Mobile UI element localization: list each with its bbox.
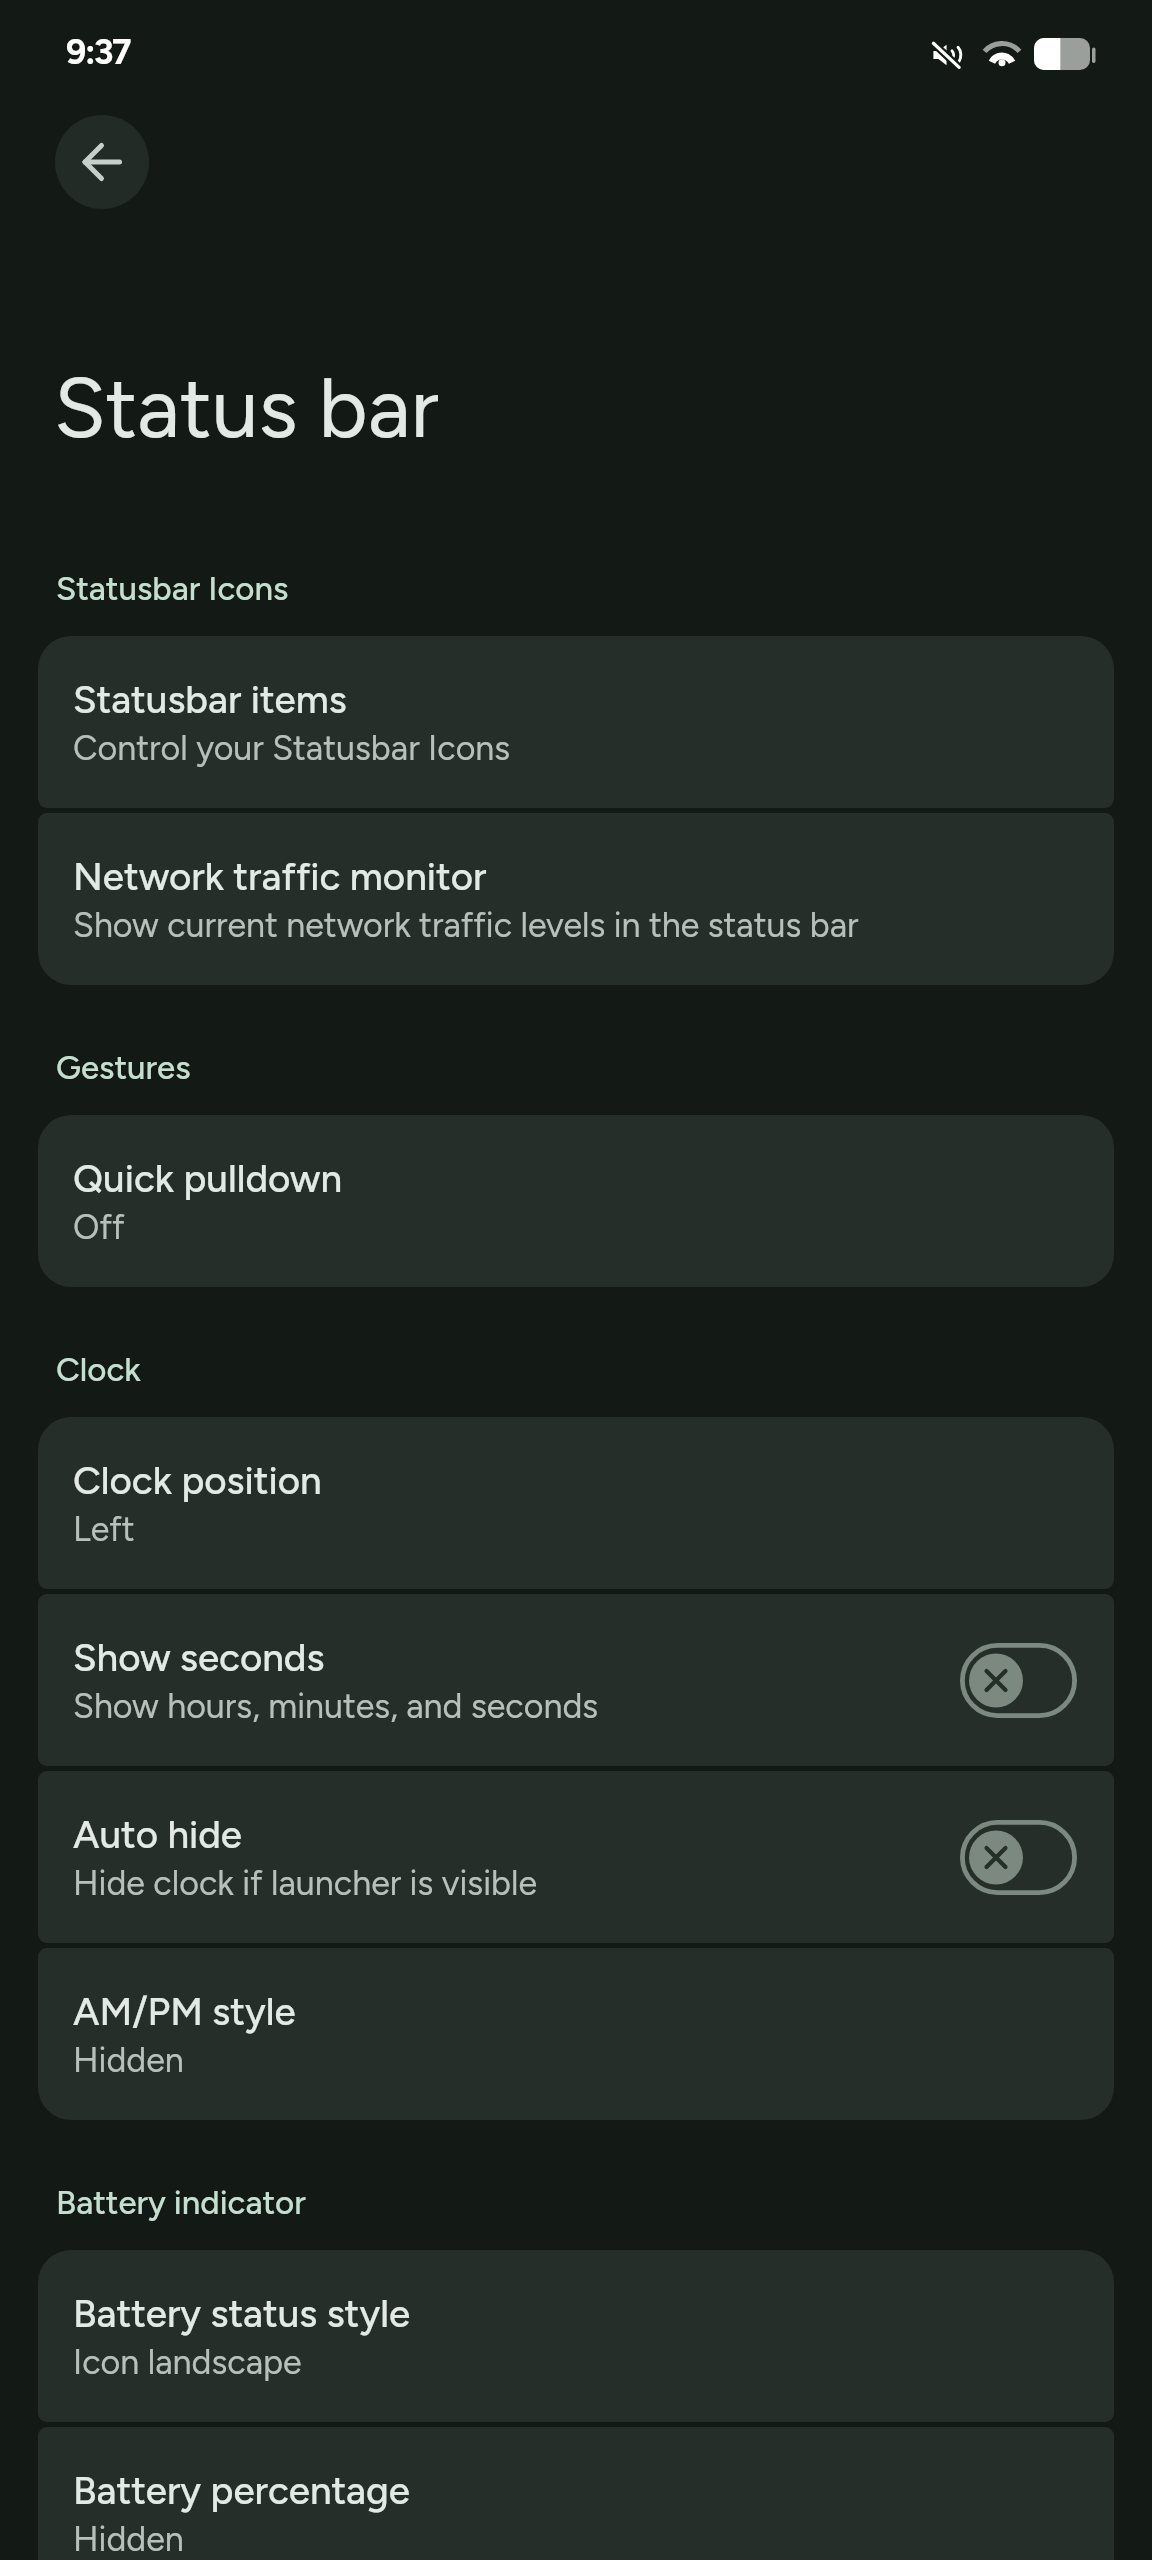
- staticText: Gestures: [56, 1048, 191, 1088]
- staticText: AM/PM style: [73, 1988, 296, 2034]
- staticText: Show current network traffic levels in t…: [73, 905, 859, 946]
- staticText: Icon landscape: [73, 2342, 302, 2383]
- staticText: Off: [73, 1207, 125, 1248]
- button[interactable]: Clock position: [38, 1417, 1114, 1589]
- staticText: Control your Statusbar Icons: [73, 728, 511, 769]
- staticText: Show seconds: [73, 1634, 325, 1680]
- button[interactable]: AM/PM style: [38, 1948, 1114, 2120]
- staticText: Battery percentage: [73, 2467, 410, 2513]
- staticText: Statusbar Icons: [56, 569, 289, 609]
- staticText: Hidden: [73, 2040, 184, 2081]
- staticText: 9:37: [66, 31, 131, 73]
- button[interactable]: Back: [55, 115, 149, 209]
- staticText: Hide clock if launcher is visible: [73, 1863, 537, 1904]
- staticText: Status bar: [54, 357, 439, 458]
- staticText: Hidden: [73, 2519, 184, 2560]
- staticText: Battery status style: [73, 2290, 411, 2336]
- button[interactable]: Show seconds: [38, 1594, 1114, 1766]
- button[interactable]: Toggle off: [960, 1820, 1077, 1895]
- button[interactable]: Statusbar items: [38, 636, 1114, 808]
- button[interactable]: Toggle off: [960, 1643, 1077, 1718]
- staticText: Network traffic monitor: [73, 853, 487, 899]
- staticText: Battery indicator: [56, 2183, 306, 2223]
- staticText: Clock: [56, 1350, 141, 1390]
- button[interactable]: Battery status style: [38, 2250, 1114, 2422]
- staticText: Show hours, minutes, and seconds: [73, 1686, 599, 1727]
- button[interactable]: Quick pulldown: [38, 1115, 1114, 1287]
- button[interactable]: Network traffic monitor: [38, 813, 1114, 985]
- staticText: Clock position: [73, 1457, 322, 1503]
- staticText: Auto hide: [73, 1811, 242, 1857]
- staticText: Quick pulldown: [73, 1155, 343, 1201]
- staticText: Statusbar items: [73, 676, 347, 722]
- button[interactable]: Auto hide: [38, 1771, 1114, 1943]
- button[interactable]: Battery percentage: [38, 2427, 1114, 2560]
- staticText: Left: [73, 1509, 135, 1550]
